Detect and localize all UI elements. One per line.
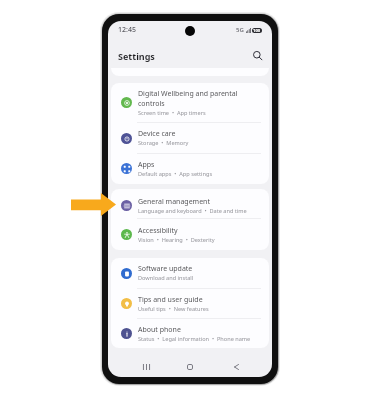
button[interactable]: Recents — [136, 357, 156, 377]
button[interactable]: Back — [226, 357, 246, 377]
button[interactable]: Apps — [111, 154, 269, 183]
staticText: Vision • Hearing • Dexterity — [138, 236, 215, 244]
staticText: 100 — [253, 28, 261, 33]
button[interactable]: Software update — [111, 258, 269, 288]
button[interactable]: General management — [111, 189, 269, 218]
staticText: Default apps • App settings — [138, 170, 213, 178]
staticText: Device care — [138, 129, 176, 139]
button[interactable]: About phone — [111, 319, 269, 348]
button[interactable]: Home — [180, 357, 200, 377]
button[interactable]: Search — [248, 46, 266, 64]
staticText: Digital Wellbeing and parental controls — [138, 89, 263, 109]
staticText: Settings — [118, 50, 155, 62]
staticText: Accessibility — [138, 226, 178, 236]
staticText: Download and install — [138, 274, 194, 282]
staticText: Apps — [138, 160, 155, 170]
staticText: Useful tips • New features — [138, 305, 209, 313]
staticText: 12:45 — [118, 25, 136, 35]
button[interactable]: Device care — [111, 123, 269, 153]
staticText: Software update — [138, 264, 193, 274]
staticText: General management — [138, 197, 210, 207]
staticText: Tips and user guide — [138, 295, 203, 305]
staticText: Storage • Memory — [138, 139, 189, 147]
staticText: Screen time • App timers — [138, 109, 206, 117]
staticText: About phone — [138, 325, 181, 335]
button[interactable]: Tips and user guide — [111, 289, 269, 318]
staticText: Status • Legal information • Phone name — [138, 335, 251, 343]
staticText: Language and keyboard • Date and time — [138, 207, 247, 215]
staticText: 5G — [236, 26, 244, 34]
button[interactable]: Accessibility — [111, 219, 269, 250]
button[interactable]: Digital Wellbeing and parental controls — [111, 83, 269, 122]
